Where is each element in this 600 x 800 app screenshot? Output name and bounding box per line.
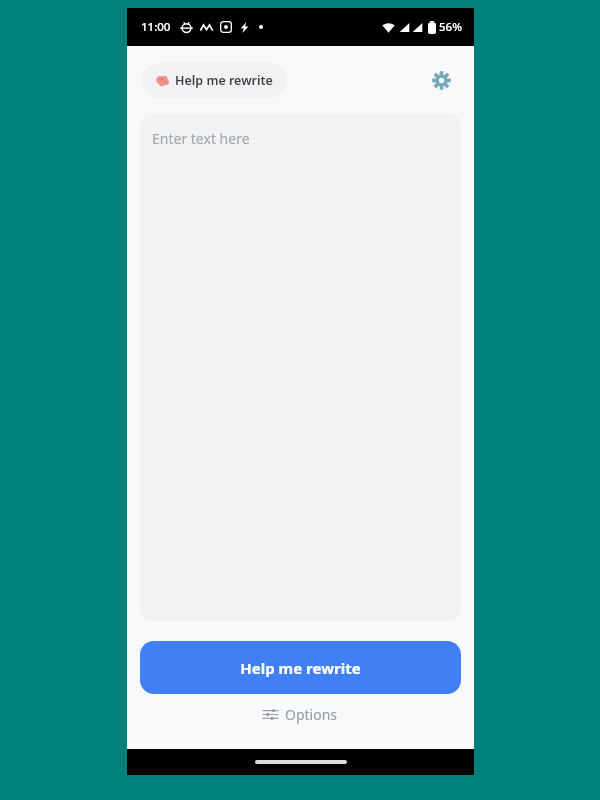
button[interactable]: Help me rewrite: [140, 641, 461, 694]
staticText: Help me rewrite: [175, 72, 273, 89]
staticText: 11:00: [141, 19, 171, 35]
button[interactable]: Help me rewrite: [142, 63, 287, 98]
staticText: Enter text here: [152, 129, 250, 148]
button[interactable]: Settings: [425, 64, 457, 96]
staticText: Options: [285, 705, 338, 724]
staticText: 56%: [439, 19, 462, 35]
staticText: Help me rewrite: [240, 658, 361, 678]
button[interactable]: Options: [251, 698, 350, 731]
